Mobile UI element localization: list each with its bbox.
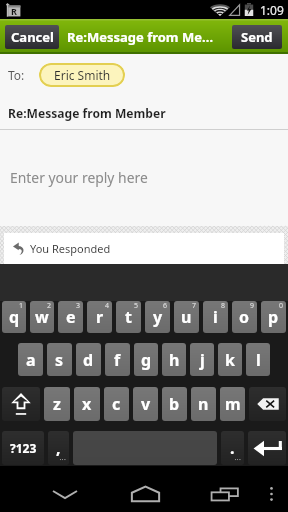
staticText: e [66, 306, 76, 328]
staticText: s [55, 349, 64, 371]
staticText: Eric Smith [54, 67, 111, 83]
button[interactable]: c [104, 387, 129, 421]
button[interactable]: Enter [248, 431, 286, 465]
staticText: x [82, 393, 92, 415]
button[interactable]: More options [254, 478, 288, 510]
button[interactable]: y [145, 301, 170, 333]
button[interactable]: m [220, 387, 245, 421]
button[interactable]: l [246, 343, 270, 376]
staticText: z [53, 393, 61, 415]
button[interactable]: Recent apps [201, 478, 249, 510]
staticText: 7 [192, 301, 197, 311]
staticText: 8 [221, 301, 226, 311]
staticText: i [213, 306, 218, 328]
staticText: R [11, 5, 17, 17]
staticText: ⋯ [234, 456, 241, 464]
staticText: 9 [250, 301, 255, 311]
staticText: 4 [105, 301, 110, 311]
staticText: Re:Message from Me… [67, 28, 214, 46]
button[interactable]: e [58, 301, 83, 333]
button[interactable]: q [2, 301, 26, 333]
button[interactable]: Hide keyboard [41, 478, 89, 510]
button[interactable]: f [105, 343, 130, 376]
staticText: u [181, 306, 192, 328]
button[interactable]: b [162, 387, 187, 421]
staticText: h [169, 349, 180, 371]
button[interactable]: Home [121, 478, 169, 510]
button[interactable]: v [133, 387, 158, 421]
button[interactable]: Cancel [5, 25, 59, 49]
staticText: 3 [76, 301, 81, 311]
staticText: , [56, 437, 61, 459]
button[interactable]: i [203, 301, 228, 333]
button[interactable]: , [48, 431, 69, 465]
button[interactable]: n [191, 387, 216, 421]
staticText: f [114, 349, 121, 371]
staticText: 1 [19, 301, 24, 311]
staticText: v [141, 393, 151, 415]
staticText: Send [241, 28, 273, 46]
staticText: w [35, 306, 49, 328]
staticText: Cancel [11, 28, 54, 46]
button[interactable]: Eric Smith [39, 63, 125, 87]
staticText: 5 [134, 301, 139, 311]
button[interactable]: k [218, 343, 242, 376]
staticText: r [96, 306, 104, 328]
button[interactable]: r [87, 301, 112, 333]
staticText: p [268, 306, 279, 328]
staticText: 2 [47, 301, 52, 311]
staticText: l [256, 349, 261, 371]
button[interactable]: Symbols [2, 431, 44, 465]
staticText: ?123 [10, 440, 37, 456]
staticText: To: [8, 67, 25, 83]
button[interactable]: a [18, 343, 43, 376]
button[interactable]: h [162, 343, 186, 376]
button[interactable]: p [261, 301, 286, 333]
staticText: y [153, 306, 163, 328]
staticText: j [200, 349, 205, 371]
staticText: t [125, 306, 132, 328]
staticText: 0 [279, 301, 284, 311]
button[interactable]: g [134, 343, 158, 376]
staticText: You Responded [30, 241, 111, 256]
button[interactable]: Backspace [249, 387, 286, 421]
staticText: m [225, 393, 241, 415]
staticText: b [169, 393, 180, 415]
staticText: d [83, 349, 94, 371]
staticText: Re:Message from Member [8, 105, 166, 121]
staticText: g [141, 349, 152, 371]
button[interactable]: . [221, 431, 244, 465]
button[interactable]: w [30, 301, 54, 333]
button[interactable]: j [190, 343, 214, 376]
staticText: . [230, 437, 235, 459]
button[interactable]: z [44, 387, 70, 421]
button[interactable]: Shift [2, 387, 40, 421]
staticText: 6 [163, 301, 168, 311]
button[interactable]: d [76, 343, 101, 376]
button[interactable]: t [116, 301, 141, 333]
button[interactable]: x [74, 387, 100, 421]
button[interactable]: Send [232, 25, 282, 49]
staticText: ⋯ [59, 456, 66, 464]
button[interactable]: s [47, 343, 72, 376]
button[interactable]: o [232, 301, 257, 333]
staticText: o [239, 306, 250, 328]
button[interactable]: You Responded [4, 233, 284, 264]
staticText: a [26, 349, 36, 371]
staticText: 1:09 [260, 2, 284, 18]
staticText: c [112, 393, 121, 415]
staticText: q [9, 306, 20, 328]
staticText: n [198, 393, 209, 415]
staticText: Enter your reply here [10, 168, 148, 187]
button[interactable]: u [174, 301, 199, 333]
staticText: k [225, 349, 235, 371]
